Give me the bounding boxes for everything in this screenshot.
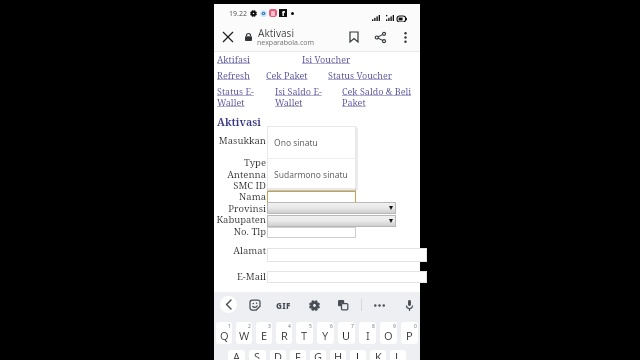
button[interactable]: A	[228, 350, 245, 360]
button[interactable]	[267, 191, 356, 203]
staticText: P	[406, 328, 413, 343]
button[interactable]: Back	[220, 296, 237, 313]
button[interactable]: GIF	[273, 297, 293, 313]
button[interactable]: Bookmark	[343, 22, 365, 52]
button[interactable]	[267, 215, 396, 227]
staticText: W	[239, 328, 250, 343]
button[interactable]: E	[256, 322, 272, 344]
staticText: 8	[372, 323, 375, 330]
button[interactable]: Y	[317, 322, 334, 344]
button[interactable]: Ono sinatu	[267, 126, 356, 158]
staticText: Ono sinatu	[274, 137, 318, 149]
staticText: Aktivasi	[217, 115, 261, 129]
staticText: 7	[351, 323, 354, 330]
staticText: 2	[248, 323, 251, 330]
staticText: 1	[228, 323, 231, 330]
button[interactable]: Emoji	[246, 296, 264, 314]
staticText: Type Antenna	[227, 156, 266, 181]
button[interactable]: Settings	[305, 296, 323, 314]
staticText: D	[274, 350, 283, 359]
staticText: Sudarmono sinatu	[274, 169, 348, 181]
staticText: 0	[414, 323, 417, 330]
button[interactable]: W	[236, 322, 252, 344]
button[interactable]: Voice input	[400, 296, 418, 314]
button[interactable]: More options	[395, 22, 415, 52]
staticText: H	[334, 350, 343, 359]
button[interactable]: Sudarmono sinatu	[267, 159, 356, 189]
staticText: SMC ID	[233, 179, 266, 192]
button[interactable]: R	[276, 322, 292, 344]
button[interactable]: P	[401, 322, 418, 344]
staticText: S	[254, 350, 261, 359]
staticText: 19.22	[229, 9, 247, 19]
staticText: T	[301, 328, 308, 343]
staticText: A	[233, 350, 241, 359]
staticText: No. Tlp	[233, 225, 266, 238]
button[interactable]: Cek Saldo & Beli Paket	[342, 85, 412, 108]
button[interactable]: I	[359, 322, 376, 344]
button[interactable]: Isi Saldo E- Wallet	[275, 85, 322, 108]
staticText: Kabupaten	[216, 213, 266, 226]
button[interactable]: K	[370, 350, 386, 360]
staticText: K	[375, 350, 382, 359]
staticText: L	[395, 350, 401, 359]
button[interactable]: Isi Voucher	[302, 53, 351, 65]
staticText: nexparabola.com	[257, 38, 315, 48]
button[interactable]: H	[330, 350, 346, 360]
staticText: 9	[393, 323, 396, 330]
staticText: f	[282, 9, 285, 17]
staticText: Masukkan	[218, 134, 266, 147]
button[interactable]: Q	[216, 322, 232, 344]
button[interactable]: Aktifasi	[217, 53, 250, 65]
staticText: Q	[220, 328, 229, 343]
staticText: Y	[322, 328, 329, 343]
staticText: 3	[268, 323, 271, 330]
button[interactable]: U	[338, 322, 355, 344]
button[interactable]: Status Voucher	[328, 69, 393, 81]
button[interactable]: Refresh	[217, 69, 250, 81]
button[interactable]: Close	[216, 22, 240, 52]
staticText: 4	[288, 323, 291, 330]
button[interactable]	[267, 179, 356, 191]
staticText: I	[366, 328, 370, 343]
button[interactable]: T	[296, 322, 313, 344]
staticText: E-Mail	[236, 270, 266, 283]
button[interactable]: Share	[369, 22, 391, 52]
staticText: 5	[309, 323, 312, 330]
staticText: J	[356, 350, 360, 359]
button[interactable]: Translate	[334, 296, 352, 314]
staticText: F	[295, 350, 301, 359]
button[interactable]: More	[370, 296, 388, 314]
staticText: Alamat	[233, 244, 266, 257]
staticText: Provinsi	[228, 202, 266, 215]
staticText: GIF	[276, 300, 291, 311]
staticText: G	[314, 350, 323, 359]
button[interactable]: F	[290, 350, 306, 360]
button[interactable]	[267, 248, 427, 262]
staticText: Aktivasi	[258, 26, 294, 40]
staticText: 6	[330, 323, 333, 330]
staticText: R	[281, 328, 288, 343]
button[interactable]: D	[270, 350, 286, 360]
staticText: Nama	[239, 190, 266, 203]
staticText: U	[342, 328, 351, 343]
button[interactable]	[267, 227, 356, 238]
button[interactable]: S	[249, 350, 266, 360]
button[interactable]: Cek Paket	[266, 69, 308, 81]
staticText: O	[384, 328, 393, 343]
button[interactable]: J	[350, 350, 366, 360]
button[interactable]: Status E- Wallet	[217, 85, 254, 108]
button[interactable]: G	[310, 350, 326, 360]
staticText: E	[261, 328, 268, 343]
button[interactable]	[267, 271, 427, 283]
button[interactable]: O	[380, 322, 397, 344]
button[interactable]: L	[390, 350, 406, 360]
button[interactable]	[267, 202, 396, 214]
